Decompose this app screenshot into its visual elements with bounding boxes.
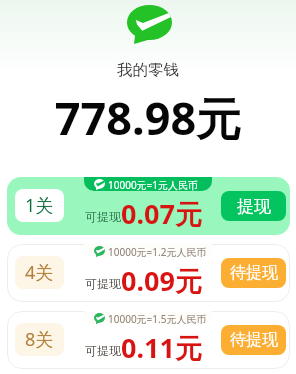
staticText: 1关 — [25, 193, 54, 218]
staticText: 10000元=1.5元人民币 — [108, 312, 207, 324]
staticText: 778.98元 — [0, 87, 296, 148]
button[interactable]: 提现 — [221, 191, 286, 221]
button[interactable]: 1关 — [7, 177, 290, 235]
staticText: 可提现 — [85, 276, 121, 291]
staticText: 可提现 — [85, 209, 121, 224]
staticText: 待提现 — [230, 330, 278, 350]
staticText: 0.09元 — [121, 262, 202, 299]
staticText: 提现 — [237, 196, 271, 217]
staticText: 4关 — [25, 260, 54, 285]
staticText: 待提现 — [230, 263, 278, 283]
button[interactable]: 8关 — [7, 311, 290, 369]
staticText: 10000元=1.2元人民币 — [108, 245, 207, 257]
staticText: 可提现 — [85, 343, 121, 358]
button[interactable]: 4关 — [7, 244, 290, 302]
staticText: 0.11元 — [121, 329, 202, 366]
staticText: 10000元=1元人民币 — [108, 178, 199, 191]
button[interactable]: 待提现 — [221, 258, 286, 288]
staticText: 我的零钱 — [0, 60, 296, 80]
staticText: 8关 — [25, 327, 54, 352]
staticText: 0.07元 — [121, 195, 202, 232]
other: WeChat Pay — [127, 5, 172, 44]
button[interactable]: 待提现 — [221, 325, 286, 355]
